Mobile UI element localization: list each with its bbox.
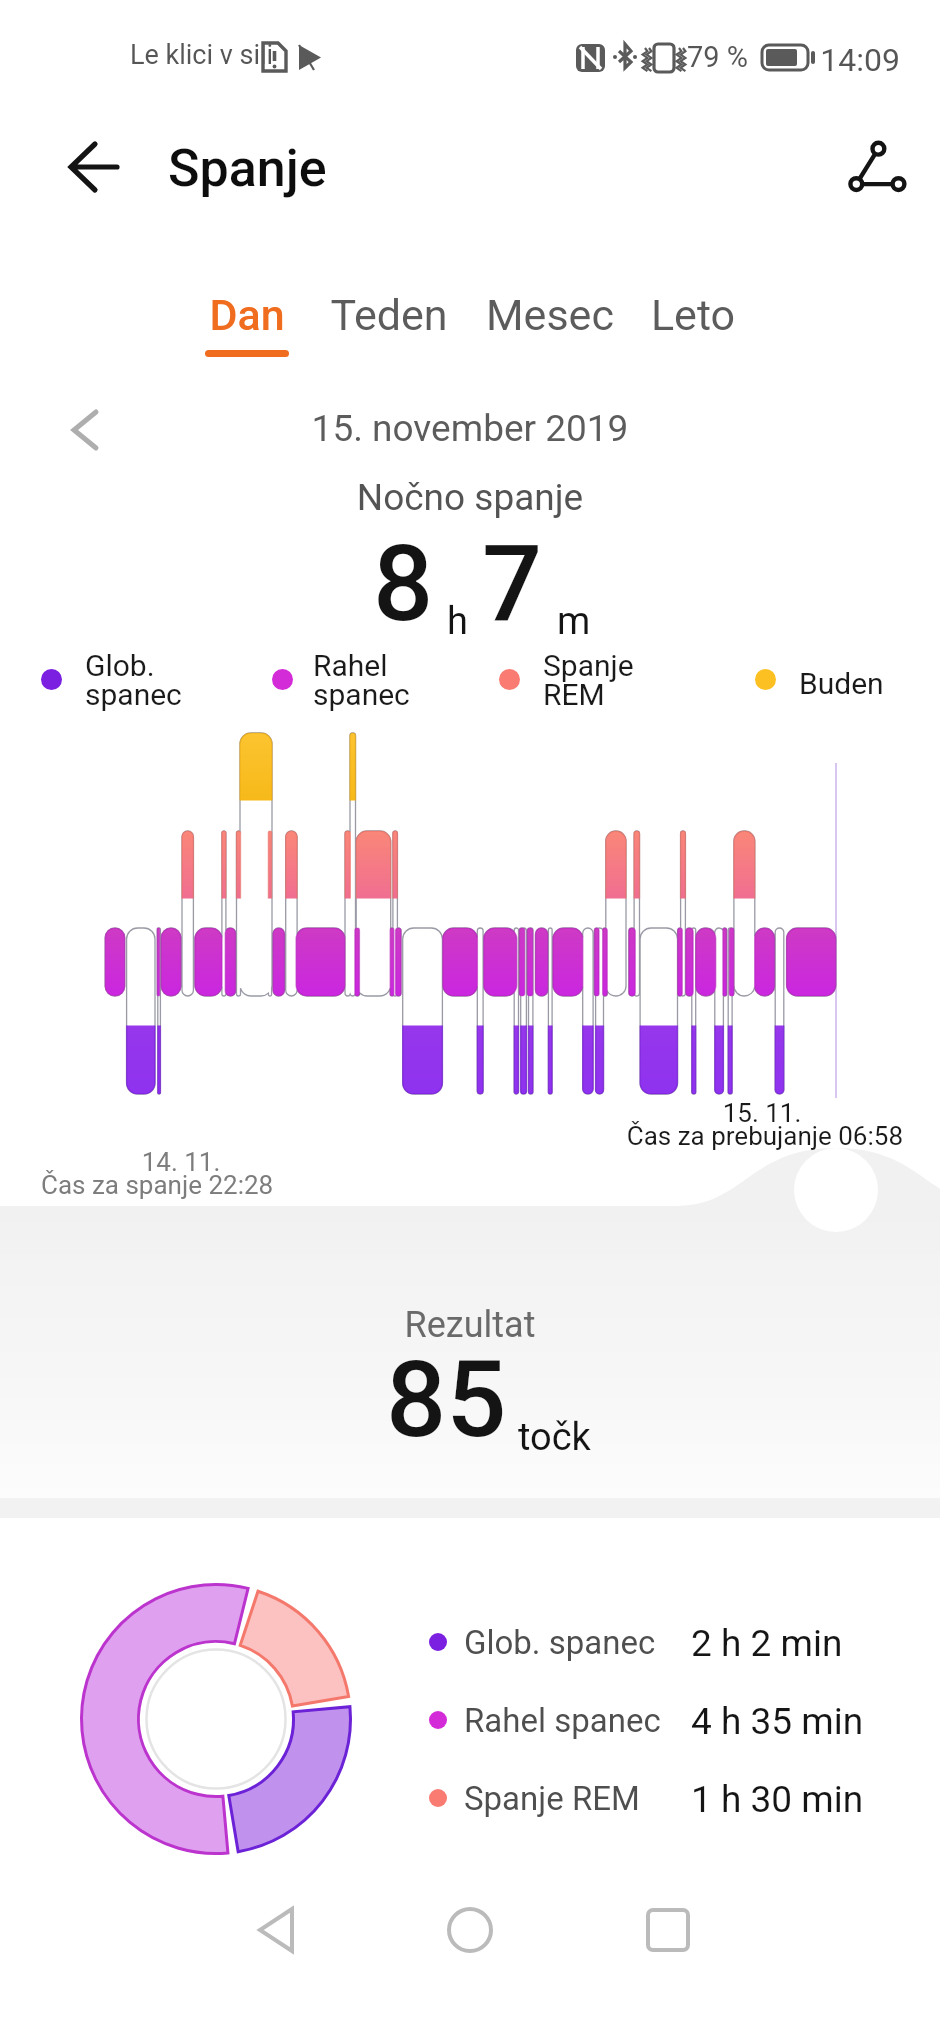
staticText: h <box>447 599 468 644</box>
staticText: Mesec <box>400 290 700 340</box>
button[interactable] <box>420 1610 870 1674</box>
button[interactable]: Home <box>425 1885 515 1975</box>
button[interactable] <box>490 283 610 365</box>
staticText: spanec <box>313 677 410 712</box>
staticText: 4 h 35 min <box>691 1700 901 1743</box>
staticText: Rezultat <box>170 1304 770 1346</box>
button[interactable] <box>35 650 245 710</box>
staticText: 15. november 2019 <box>170 407 770 450</box>
staticText: Spanje <box>543 648 634 683</box>
staticText: Glob. spanec <box>464 1623 656 1662</box>
staticText: 14. 11. <box>31 1147 331 1177</box>
staticText: Dan <box>97 290 397 340</box>
staticText: 1 h 30 min <box>691 1778 901 1821</box>
staticText: točk <box>518 1415 591 1460</box>
staticText: 15. 11. <box>612 1098 912 1128</box>
staticText: 14:09 <box>600 41 900 79</box>
button[interactable] <box>329 283 449 365</box>
staticText: Rahel spanec <box>464 1701 661 1740</box>
button[interactable] <box>633 283 753 365</box>
staticText: Čas za spanje 22:28 <box>41 1170 641 1200</box>
staticText: Buden <box>799 666 884 701</box>
staticText: Čas za prebujanje 06:58 <box>403 1121 903 1151</box>
staticText: Teden <box>239 290 539 340</box>
button[interactable]: Share <box>840 132 912 202</box>
button[interactable] <box>749 650 940 710</box>
staticText: Le klici v sili <box>130 39 730 71</box>
staticText: m <box>557 599 591 644</box>
button[interactable]: Back <box>233 1885 323 1975</box>
staticText: 79 % <box>687 40 940 74</box>
staticText: 85 <box>386 1338 507 1462</box>
staticText: 2 h 2 min <box>691 1622 901 1665</box>
staticText: REM <box>543 677 605 712</box>
button[interactable]: Previous day <box>58 402 114 458</box>
staticText: Leto <box>543 290 843 340</box>
button[interactable] <box>493 650 703 710</box>
staticText: Rahel <box>313 648 388 683</box>
button[interactable]: Recents <box>623 1885 713 1975</box>
button[interactable] <box>420 1688 870 1752</box>
button[interactable]: Back <box>48 128 136 206</box>
staticText: spanec <box>85 677 182 712</box>
button[interactable] <box>187 283 307 365</box>
staticText: 7 <box>482 522 543 646</box>
button[interactable] <box>266 650 476 710</box>
staticText: Nočno spanje <box>170 476 770 519</box>
staticText: Spanje <box>168 138 768 199</box>
staticText: Spanje REM <box>464 1779 640 1818</box>
staticText: Glob. <box>85 648 155 683</box>
button[interactable] <box>420 1766 870 1830</box>
staticText: 8 <box>373 522 434 646</box>
